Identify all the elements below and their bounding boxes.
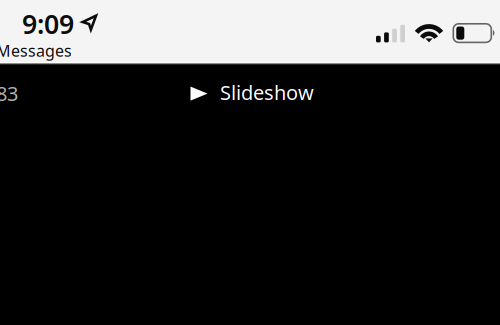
button[interactable]: Slideshow: [190, 79, 314, 106]
staticText: 83: [0, 80, 18, 107]
staticText: Slideshow: [220, 79, 314, 106]
button[interactable]: Messages: [0, 40, 72, 61]
staticText: Messages: [0, 40, 72, 61]
staticText: 9:09: [22, 6, 74, 41]
